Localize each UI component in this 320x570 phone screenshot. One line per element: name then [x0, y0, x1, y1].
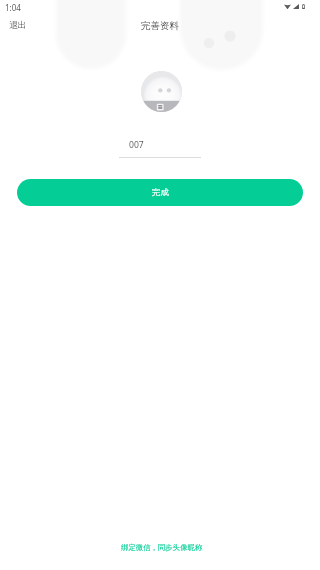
staticText: 完善资料 — [141, 20, 179, 32]
staticText: 1:04 — [5, 2, 21, 13]
button[interactable]: 绑定微信，同步头像昵称 — [111, 540, 213, 555]
staticText: 退出 — [9, 20, 27, 31]
button[interactable]: 退出 — [0, 17, 36, 35]
button[interactable]: Change avatar — [141, 71, 182, 112]
staticText: 完成 — [152, 187, 169, 198]
button[interactable]: 完成 — [17, 179, 303, 206]
staticText: 绑定微信，同步头像昵称 — [121, 543, 203, 552]
staticText: 007 — [129, 139, 144, 151]
